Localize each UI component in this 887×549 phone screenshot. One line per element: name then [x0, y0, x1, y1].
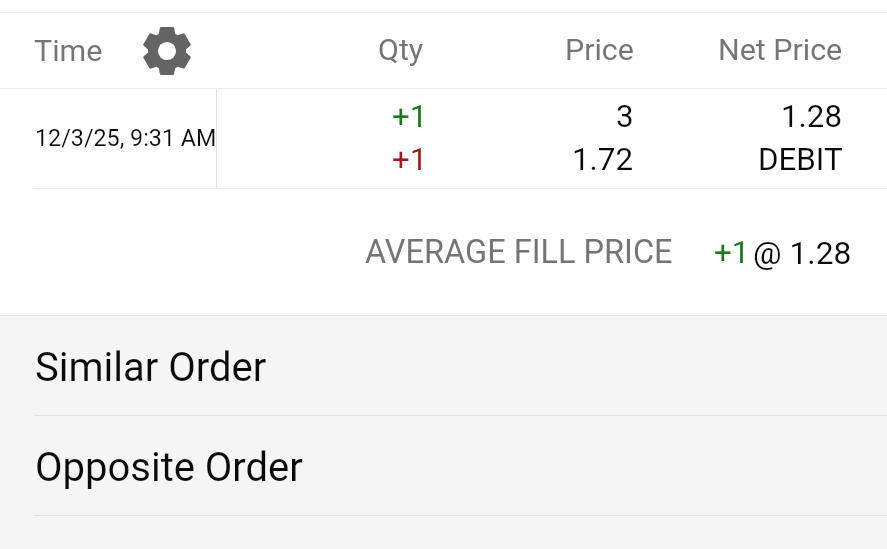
staticText: Similar Order — [35, 344, 267, 391]
staticText: Price — [565, 32, 634, 68]
button[interactable]: Settings — [134, 18, 200, 84]
staticText: 12/3/25, 9:31 AM — [35, 124, 217, 151]
button[interactable]: Opposite Order — [0, 416, 887, 515]
staticText: Time — [34, 33, 103, 69]
staticText: DEBIT — [758, 141, 843, 178]
staticText: +1 — [714, 234, 750, 271]
staticText: Net Price — [718, 32, 843, 68]
staticText: @ 1.28 — [753, 234, 852, 271]
staticText: +1 — [392, 141, 428, 178]
staticText: +1 — [392, 98, 428, 135]
staticText: AVERAGE FILL PRICE — [365, 233, 673, 271]
staticText: Qty — [378, 32, 424, 68]
staticText: 1.28 — [781, 98, 843, 135]
staticText: Opposite Order — [35, 444, 303, 491]
staticText: 1.72 — [572, 141, 634, 178]
staticText: 3 — [616, 98, 634, 135]
button[interactable]: Similar Order — [0, 316, 887, 415]
